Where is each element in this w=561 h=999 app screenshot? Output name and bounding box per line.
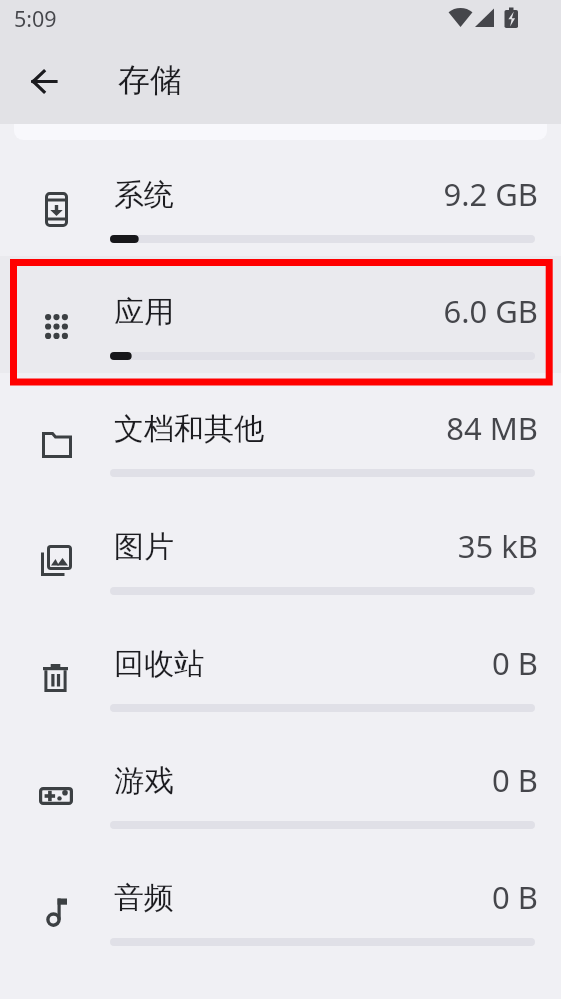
staticText: 0 B (0, 876, 538, 918)
staticText: 文档和其他 (114, 410, 264, 448)
staticText: 6.0 GB (0, 290, 538, 332)
staticText: 35 kB (0, 525, 538, 567)
button[interactable]: 游戏 (0, 725, 561, 842)
staticText: 9.2 GB (0, 173, 538, 215)
staticText: 5:09 (14, 4, 57, 33)
staticText: 音频 (114, 879, 174, 917)
staticText: 84 MB (0, 407, 538, 449)
staticText: 0 B (0, 759, 538, 801)
button[interactable]: 图片 (0, 491, 561, 608)
button[interactable]: 回收站 (0, 608, 561, 725)
button[interactable]: 音频 (0, 842, 561, 959)
button[interactable]: 文档和其他 (0, 373, 561, 490)
button[interactable]: Back (20, 57, 68, 105)
staticText: 回收站 (114, 645, 204, 683)
button[interactable]: 系统 (0, 139, 561, 256)
staticText: 0 B (0, 642, 538, 684)
staticText: 应用 (114, 293, 174, 331)
staticText: 存储 (118, 60, 182, 100)
staticText: 系统 (114, 176, 174, 214)
staticText: 游戏 (114, 762, 174, 800)
button[interactable]: 应用 (0, 256, 561, 373)
staticText: 图片 (114, 528, 174, 566)
